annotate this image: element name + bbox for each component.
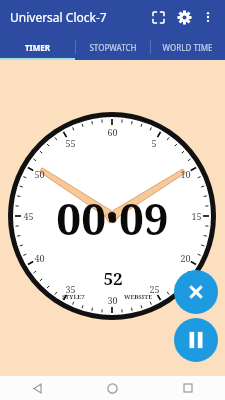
staticText: 25 (149, 283, 160, 295)
button[interactable]: Fullscreen (145, 4, 171, 30)
button[interactable]: Back (0, 376, 75, 400)
staticText: 45 (23, 210, 34, 222)
staticText: 15 (191, 210, 202, 222)
staticText: Universal Clock-7 (10, 9, 107, 25)
staticText: STYLE7 (62, 293, 85, 301)
button[interactable]: Stop (174, 270, 218, 314)
button[interactable]: STOPWATCH (75, 34, 150, 60)
button[interactable]: Pause (174, 318, 218, 362)
button[interactable]: Home (75, 376, 150, 400)
staticText: 50 (34, 168, 45, 180)
staticText: 20 (180, 252, 191, 264)
staticText: TIMER (25, 42, 50, 53)
staticText: 00·09 (56, 188, 169, 244)
staticText: 52 (103, 267, 123, 289)
staticText: 10 (180, 168, 191, 180)
staticText: 30 (107, 294, 118, 306)
staticText: STOPWATCH (89, 42, 137, 53)
staticText: 60 (107, 126, 118, 138)
button[interactable]: Recent apps (150, 376, 225, 400)
staticText: 40 (34, 252, 45, 264)
button[interactable]: More options (197, 6, 219, 28)
button[interactable]: Settings (171, 4, 197, 30)
button[interactable]: TIMER (0, 34, 75, 60)
staticText: 35 (65, 283, 76, 295)
staticText: 5 (151, 137, 157, 149)
staticText: 55 (65, 137, 76, 149)
staticText: WEBSITE (124, 293, 153, 301)
button[interactable]: WORLD TIME (150, 34, 225, 60)
staticText: WORLD TIME (162, 42, 213, 53)
